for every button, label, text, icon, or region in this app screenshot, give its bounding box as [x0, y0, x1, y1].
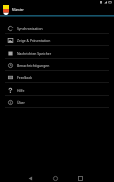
staticText: Zeige & Präsentation	[17, 38, 51, 43]
staticText: Hilfe	[17, 88, 25, 93]
button[interactable]: Recents	[74, 172, 86, 182]
button[interactable]: Feedback	[0, 71, 114, 83]
staticText: Nachrichten Speicher	[17, 51, 52, 56]
button[interactable]: Synchronisation	[0, 22, 114, 34]
staticText: Münster	[12, 8, 24, 12]
button[interactable]: Home	[49, 172, 61, 182]
button[interactable]: Back	[24, 172, 36, 182]
button[interactable]: Zeige & Präsentation	[0, 34, 114, 46]
staticText: Feedback	[17, 75, 33, 80]
button[interactable]: Benachrichtigungen	[0, 59, 114, 71]
staticText: Über	[17, 100, 25, 105]
button[interactable]: Hilfe	[0, 84, 114, 96]
button[interactable]: Nachrichten Speicher	[0, 47, 114, 59]
button[interactable]: Über	[0, 96, 114, 108]
staticText: Benachrichtigungen	[17, 63, 50, 68]
staticText: Synchronisation	[17, 26, 43, 31]
